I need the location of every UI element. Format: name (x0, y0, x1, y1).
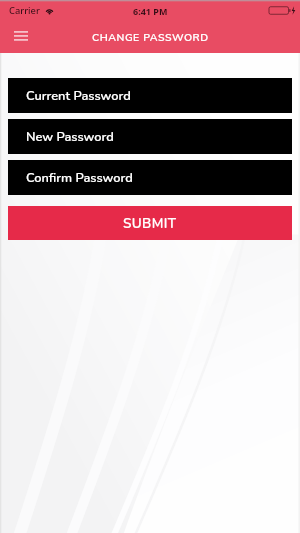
staticText: 6:41 PM (133, 5, 168, 17)
staticText: CHANGE PASSWORD (92, 30, 209, 44)
staticText: Carrier (9, 4, 40, 17)
staticText: New Password (26, 128, 114, 145)
button[interactable]: Confirm Password (8, 160, 292, 195)
button[interactable]: SUBMIT (8, 206, 292, 240)
staticText: Current Password (26, 87, 131, 104)
staticText: SUBMIT (123, 214, 177, 232)
button[interactable]: Current Password (8, 78, 292, 113)
staticText: Confirm Password (26, 169, 133, 186)
button[interactable]: New Password (8, 119, 292, 154)
button[interactable]: Open navigation menu (8, 23, 34, 49)
